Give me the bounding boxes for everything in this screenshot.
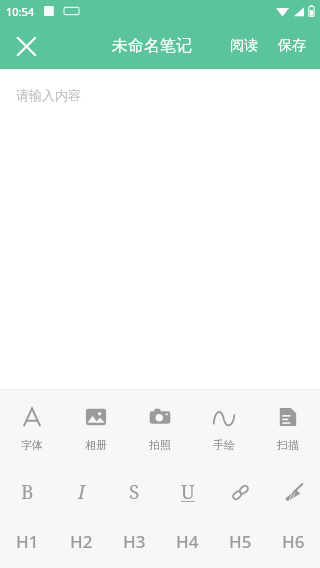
button[interactable]: H2 bbox=[54, 518, 108, 564]
button[interactable]: H6 bbox=[267, 518, 320, 564]
button[interactable]: I bbox=[54, 466, 108, 518]
staticText: 10:54 bbox=[6, 4, 35, 19]
button[interactable]: H1 bbox=[0, 518, 54, 564]
button[interactable]: H5 bbox=[214, 518, 267, 564]
staticText: I bbox=[78, 479, 85, 505]
staticText: 字体 bbox=[21, 438, 43, 452]
button[interactable]: 相册 bbox=[64, 390, 128, 466]
button[interactable]: 字体 bbox=[0, 390, 64, 466]
staticText: H5 bbox=[229, 530, 252, 553]
staticText: 相册 bbox=[85, 438, 107, 452]
staticText: H1 bbox=[16, 530, 39, 553]
staticText: 扫描 bbox=[277, 438, 299, 452]
staticText: H4 bbox=[176, 530, 199, 553]
staticText: 保存 bbox=[278, 37, 306, 55]
button[interactable]: 阅读 bbox=[220, 27, 268, 65]
button[interactable]: H3 bbox=[108, 518, 161, 564]
staticText: H2 bbox=[70, 530, 93, 553]
button[interactable]: Clear formatting bbox=[267, 466, 320, 518]
button[interactable]: 手绘 bbox=[192, 390, 256, 466]
staticText: 手绘 bbox=[213, 438, 235, 452]
staticText: 请输入内容 bbox=[16, 87, 81, 103]
staticText: 拍照 bbox=[149, 438, 171, 452]
staticText: H6 bbox=[282, 530, 305, 553]
button[interactable]: S bbox=[108, 466, 161, 518]
button[interactable]: 拍照 bbox=[128, 390, 192, 466]
staticText: 未命名笔记 bbox=[112, 36, 192, 56]
button[interactable]: H4 bbox=[161, 518, 214, 564]
button[interactable]: 保存 bbox=[268, 27, 320, 65]
button[interactable]: U bbox=[161, 466, 214, 518]
staticText: U bbox=[181, 479, 195, 505]
staticText: S bbox=[129, 479, 140, 505]
button[interactable]: Insert link bbox=[214, 466, 267, 518]
button[interactable]: Close bbox=[6, 26, 46, 66]
button[interactable]: B bbox=[0, 466, 54, 518]
staticText: B bbox=[21, 479, 34, 505]
button[interactable]: 扫描 bbox=[256, 390, 320, 466]
staticText: 阅读 bbox=[230, 37, 258, 55]
staticText: H3 bbox=[123, 530, 146, 553]
